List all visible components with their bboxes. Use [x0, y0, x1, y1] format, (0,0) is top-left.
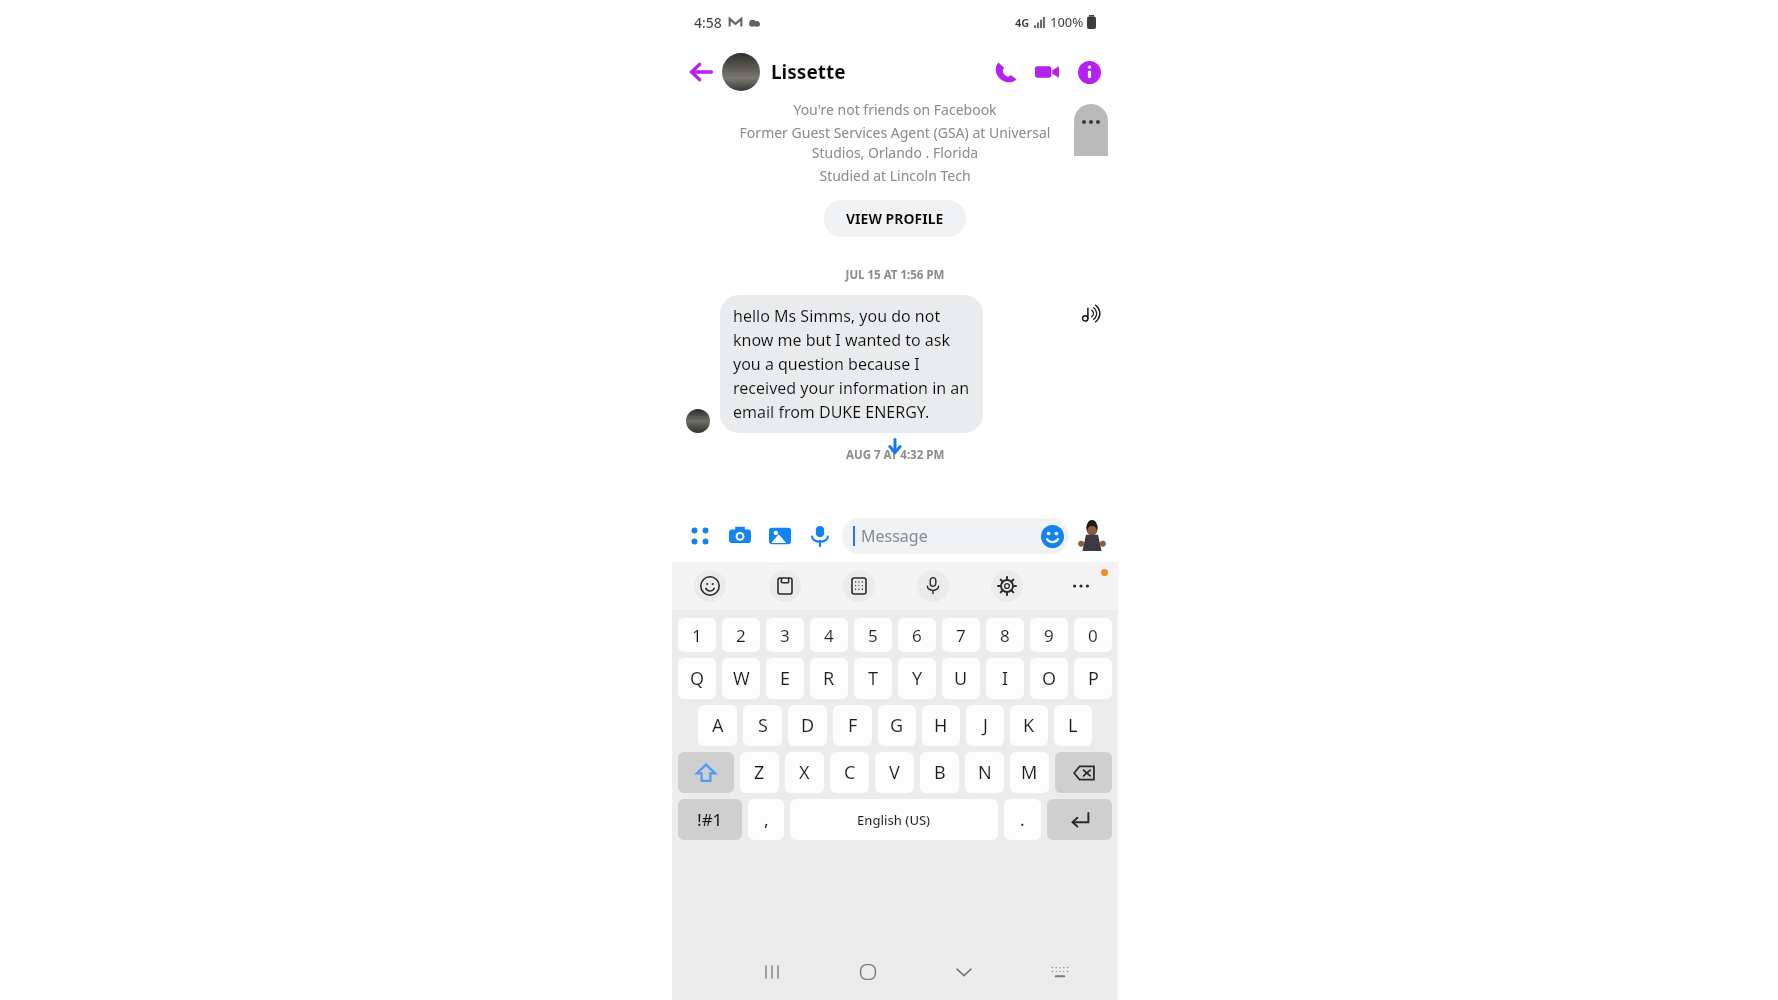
button[interactable]: Voice message: [800, 516, 840, 556]
button[interactable]: 6: [898, 618, 936, 652]
button[interactable]: Back: [680, 51, 722, 93]
button[interactable]: VIEW PROFILE: [824, 200, 966, 237]
button[interactable]: Z: [740, 752, 779, 793]
button[interactable]: ,: [748, 799, 784, 840]
button[interactable]: G: [878, 705, 916, 746]
button[interactable]: Switch keyboard: [1012, 944, 1108, 1000]
button[interactable]: N: [965, 752, 1004, 793]
button[interactable]: Enter: [1047, 799, 1112, 840]
button[interactable]: 3: [766, 618, 804, 652]
staticText: W: [733, 666, 750, 691]
button[interactable]: Keyboard settings: [970, 562, 1044, 610]
button[interactable]: 7: [942, 618, 980, 652]
button[interactable]: I: [986, 658, 1024, 699]
button[interactable]: C: [830, 752, 869, 793]
button[interactable]: More options: [680, 516, 720, 556]
button[interactable]: A: [698, 705, 737, 746]
staticText: G: [890, 713, 904, 738]
staticText: 4:58: [694, 13, 722, 32]
button[interactable]: [722, 53, 760, 91]
button[interactable]: 9: [1030, 618, 1068, 652]
staticText: I: [1002, 666, 1009, 691]
button[interactable]: V: [875, 752, 914, 793]
staticText: 100%: [1050, 13, 1084, 31]
staticText: Q: [690, 666, 705, 691]
staticText: P: [1088, 666, 1099, 691]
button[interactable]: 0: [1074, 618, 1112, 652]
staticText: English (US): [857, 811, 931, 829]
staticText: VIEW PROFILE: [846, 209, 944, 228]
button[interactable]: F: [833, 705, 872, 746]
button[interactable]: H: [922, 705, 960, 746]
button[interactable]: E: [766, 658, 804, 699]
staticText: L: [1068, 713, 1078, 738]
button[interactable]: hello Ms Simms, you do not know me but I…: [720, 295, 983, 433]
staticText: K: [1023, 713, 1035, 738]
button[interactable]: Call: [984, 51, 1026, 93]
staticText: B: [934, 760, 946, 785]
button[interactable]: 5: [854, 618, 892, 652]
staticText: U: [954, 666, 968, 691]
button[interactable]: Shift: [678, 752, 734, 793]
staticText: hello Ms Simms, you do not know me but I…: [733, 305, 970, 423]
staticText: 6: [912, 624, 922, 647]
button[interactable]: Recents: [724, 944, 820, 1000]
staticText: 7: [956, 624, 966, 647]
button[interactable]: Q: [678, 658, 716, 699]
button[interactable]: K: [1010, 705, 1048, 746]
button[interactable]: English (US): [790, 799, 998, 840]
staticText: .: [1020, 808, 1025, 831]
button[interactable]: L: [1054, 705, 1092, 746]
staticText: O: [1042, 666, 1057, 691]
staticText: M: [1021, 760, 1038, 785]
button[interactable]: Avatar sticker: [1074, 518, 1110, 554]
button[interactable]: J: [966, 705, 1004, 746]
button[interactable]: !#1: [678, 799, 742, 840]
button[interactable]: More keyboard options: [1044, 562, 1118, 610]
staticText: J: [983, 713, 988, 738]
button[interactable]: P: [1074, 658, 1112, 699]
button[interactable]: Text extraction: [822, 562, 896, 610]
button[interactable]: 4: [810, 618, 848, 652]
staticText: Former Guest Services Agent (GSA) at Uni…: [686, 123, 1104, 162]
button[interactable]: O: [1030, 658, 1068, 699]
button[interactable]: 8: [986, 618, 1024, 652]
button[interactable]: Gallery: [760, 516, 800, 556]
staticText: R: [823, 666, 835, 691]
button[interactable]: 1: [678, 618, 716, 652]
button[interactable]: Backspace: [1055, 752, 1112, 793]
button[interactable]: Emoji: [1035, 519, 1069, 553]
staticText: D: [801, 713, 815, 738]
button[interactable]: B: [920, 752, 959, 793]
button[interactable]: X: [785, 752, 824, 793]
staticText: You're not friends on Facebook: [686, 100, 1104, 119]
button[interactable]: T: [854, 658, 892, 699]
button[interactable]: Lissette: [771, 59, 984, 85]
button[interactable]: R: [810, 658, 848, 699]
button[interactable]: Camera: [720, 516, 760, 556]
staticText: ,: [764, 808, 769, 831]
button[interactable]: S: [743, 705, 782, 746]
button[interactable]: W: [722, 658, 760, 699]
staticText: T: [868, 666, 879, 691]
button[interactable]: M: [1010, 752, 1049, 793]
button[interactable]: Voice input: [896, 562, 970, 610]
staticText: 8: [1000, 624, 1010, 647]
button[interactable]: U: [942, 658, 980, 699]
button[interactable]: .: [1004, 799, 1041, 840]
button[interactable]: Hide keyboard: [916, 944, 1012, 1000]
button[interactable]: Info: [1068, 51, 1110, 93]
staticText: 4G: [1015, 15, 1030, 30]
button[interactable]: Y: [898, 658, 936, 699]
button[interactable]: Emoji: [672, 562, 747, 610]
staticText: 1: [692, 624, 702, 647]
button[interactable]: Video call: [1026, 51, 1068, 93]
staticText: 3: [780, 624, 790, 647]
button[interactable]: Message: [842, 518, 1069, 554]
button[interactable]: Home: [820, 944, 916, 1000]
button[interactable]: D: [788, 705, 827, 746]
staticText: 0: [1088, 624, 1098, 647]
button[interactable]: Clipboard: [747, 562, 822, 610]
staticText: S: [758, 713, 768, 738]
button[interactable]: 2: [722, 618, 760, 652]
